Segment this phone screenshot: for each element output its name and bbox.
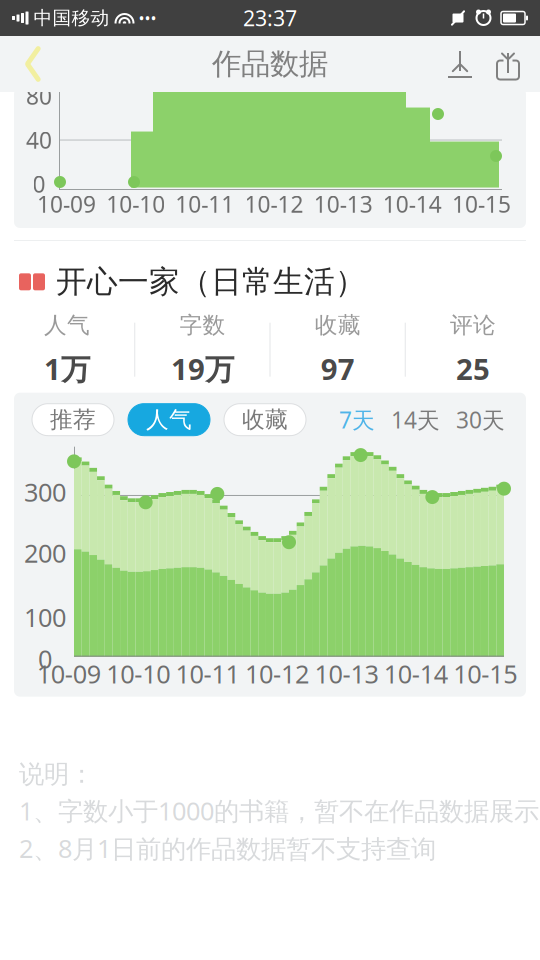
staticText: 中国移动 [33, 6, 109, 29]
staticText: 10-09 [37, 657, 101, 690]
staticText: 100 [24, 600, 66, 634]
staticText: 推荐 [50, 406, 96, 433]
staticText: 收藏 [242, 406, 288, 433]
staticText: 收藏 [315, 311, 361, 339]
button[interactable]: 14天 [386, 404, 445, 436]
staticText: 10-10 [106, 657, 170, 690]
staticText: 10-15 [453, 657, 517, 690]
staticText: 200 [24, 536, 66, 570]
button[interactable]: 人气 [128, 404, 210, 436]
staticText: 19万 [171, 349, 234, 388]
staticText: 开心一家（日常生活） [56, 263, 366, 301]
button[interactable]: Download [436, 36, 484, 92]
staticText: ••• [138, 7, 156, 29]
staticText: 人气 [44, 311, 90, 339]
staticText: 10-14 [383, 189, 442, 219]
staticText: 10-14 [384, 657, 448, 690]
staticText: 10-09 [37, 189, 96, 219]
staticText: 0 [32, 169, 45, 199]
staticText: 10-13 [314, 189, 373, 219]
staticText: 10-11 [175, 189, 234, 219]
staticText: 字数 [179, 311, 225, 339]
button[interactable]: 推荐 [32, 404, 114, 436]
staticText: 40 [26, 125, 52, 155]
staticText: 10-13 [314, 657, 378, 690]
staticText: 30天 [456, 405, 505, 435]
staticText: 1、字数小于1000的书籍，暂不在作品数据展示 [19, 794, 539, 827]
staticText: 人气 [146, 406, 192, 433]
staticText: 10-11 [176, 657, 240, 690]
staticText: 10-12 [245, 657, 309, 690]
staticText: 80 [26, 81, 52, 111]
button[interactable]: 30天 [451, 404, 510, 436]
staticText: 说明： [19, 759, 94, 790]
staticText: 7天 [339, 405, 375, 435]
staticText: 作品数据 [212, 46, 328, 82]
staticText: 10-10 [106, 189, 165, 219]
button[interactable]: 收藏 [224, 404, 306, 436]
staticText: 评论 [450, 311, 496, 339]
staticText: 2、8月1日前的作品数据暂不支持查询 [19, 831, 436, 865]
staticText: 0 [38, 642, 52, 675]
button[interactable]: Back [8, 36, 58, 92]
staticText: 1万 [44, 349, 90, 388]
button[interactable]: Share [484, 36, 532, 92]
button[interactable]: 7天 [334, 404, 380, 436]
staticText: 25 [456, 349, 490, 388]
staticText: 10-12 [244, 189, 303, 219]
staticText: 300 [24, 475, 66, 509]
staticText: 14天 [391, 405, 440, 435]
staticText: 23:37 [243, 4, 297, 32]
staticText: 97 [321, 349, 355, 388]
staticText: 10-15 [452, 189, 511, 219]
